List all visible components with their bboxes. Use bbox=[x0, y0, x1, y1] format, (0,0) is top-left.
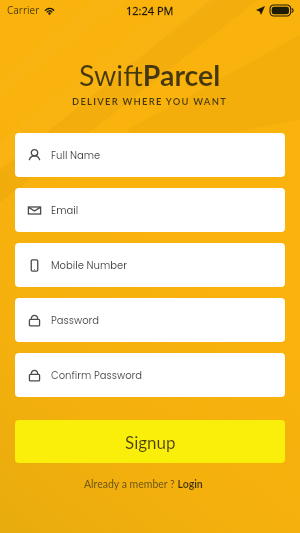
staticText: Already a member ? Login bbox=[84, 478, 203, 491]
staticText: Password bbox=[51, 313, 100, 327]
button[interactable]: Signup bbox=[15, 420, 285, 463]
button[interactable]: Email bbox=[15, 188, 285, 232]
staticText: Full Name bbox=[51, 148, 101, 162]
staticText: 12:24 PM bbox=[126, 3, 174, 18]
staticText: Confirm Password bbox=[51, 368, 143, 382]
staticText: Signup bbox=[125, 432, 176, 452]
staticText: Email bbox=[51, 203, 79, 217]
staticText: Mobile Number bbox=[51, 258, 127, 272]
button[interactable]: Password bbox=[15, 298, 285, 342]
staticText: Carrier bbox=[7, 3, 40, 17]
staticText: SwiftParcel bbox=[79, 58, 221, 92]
button[interactable]: Already a member ? Login bbox=[84, 478, 203, 491]
staticText: DELIVER WHERE YOU WANT bbox=[72, 96, 228, 107]
button[interactable]: Mobile Number bbox=[15, 243, 285, 287]
button[interactable]: Full Name bbox=[15, 133, 285, 177]
button[interactable]: Confirm Password bbox=[15, 353, 285, 397]
